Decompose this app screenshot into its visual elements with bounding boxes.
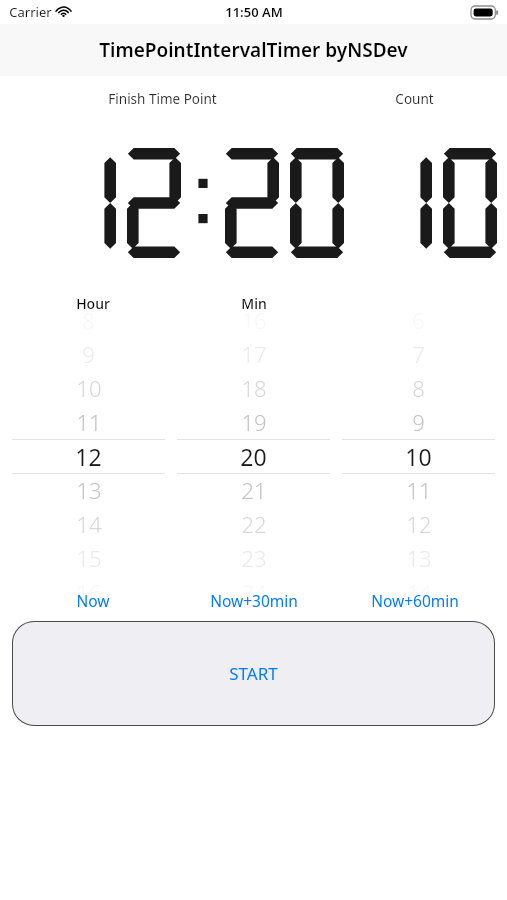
staticText: 14	[406, 577, 432, 607]
staticText: 15	[76, 543, 102, 573]
staticText: START	[229, 662, 278, 685]
staticText: 10	[405, 441, 432, 472]
button[interactable]: 18	[177, 371, 330, 405]
staticText: 9	[82, 339, 95, 369]
staticText: 22	[241, 509, 267, 539]
button[interactable]: 8	[342, 371, 495, 405]
staticText: Finish Time Point	[108, 90, 217, 108]
button[interactable]: 12	[12, 439, 165, 473]
button[interactable]: 11	[342, 473, 495, 507]
staticText: 14	[76, 509, 102, 539]
staticText: 16	[76, 577, 102, 607]
staticText: 21	[241, 475, 267, 505]
staticText: 13	[406, 543, 432, 573]
staticText: 19	[241, 407, 267, 437]
button[interactable]: 16	[12, 575, 165, 609]
button[interactable]: 8	[12, 303, 165, 337]
staticText: 8	[82, 305, 95, 335]
staticText: Carrier	[9, 3, 52, 21]
staticText: 13	[76, 475, 102, 505]
staticText: 23	[241, 543, 267, 573]
staticText: Hour	[76, 294, 110, 313]
button[interactable]: Now	[12, 587, 173, 613]
button[interactable]: START	[12, 621, 495, 726]
button[interactable]: 20	[177, 439, 330, 473]
staticText: TimePointIntervalTimer byNSDev	[99, 37, 408, 63]
button[interactable]: 16	[177, 303, 330, 337]
staticText: 9	[412, 407, 425, 437]
staticText: 11	[76, 407, 102, 437]
staticText: 8	[412, 373, 425, 403]
staticText: 20	[240, 441, 267, 472]
button[interactable]: 9	[342, 405, 495, 439]
button[interactable]: 10	[12, 371, 165, 405]
button[interactable]: 11	[12, 405, 165, 439]
button[interactable]: 14	[12, 507, 165, 541]
staticText: Now	[76, 590, 110, 611]
button[interactable]: Now+60min	[334, 587, 495, 613]
button[interactable]: 12	[342, 507, 495, 541]
button[interactable]: Now+30min	[173, 587, 334, 613]
staticText: Now+30min	[210, 590, 298, 611]
button[interactable]: 22	[177, 507, 330, 541]
button[interactable]: 13	[12, 473, 165, 507]
staticText: 17	[241, 339, 267, 369]
staticText: 11	[406, 475, 432, 505]
staticText: Now+60min	[371, 590, 459, 611]
staticText: 10	[76, 373, 102, 403]
button[interactable]: 14	[342, 575, 495, 609]
button[interactable]: 19	[177, 405, 330, 439]
staticText: 24	[241, 577, 267, 607]
staticText: 12	[406, 509, 432, 539]
staticText: 7	[412, 339, 425, 369]
staticText: 11:50 AM	[225, 3, 283, 21]
button[interactable]: 21	[177, 473, 330, 507]
staticText: 16	[241, 305, 267, 335]
staticText: Count	[395, 90, 434, 108]
staticText: 12	[75, 441, 102, 472]
button[interactable]: 24	[177, 575, 330, 609]
staticText: 18	[241, 373, 267, 403]
staticText: Min	[241, 294, 267, 313]
button[interactable]: 10	[342, 439, 495, 473]
